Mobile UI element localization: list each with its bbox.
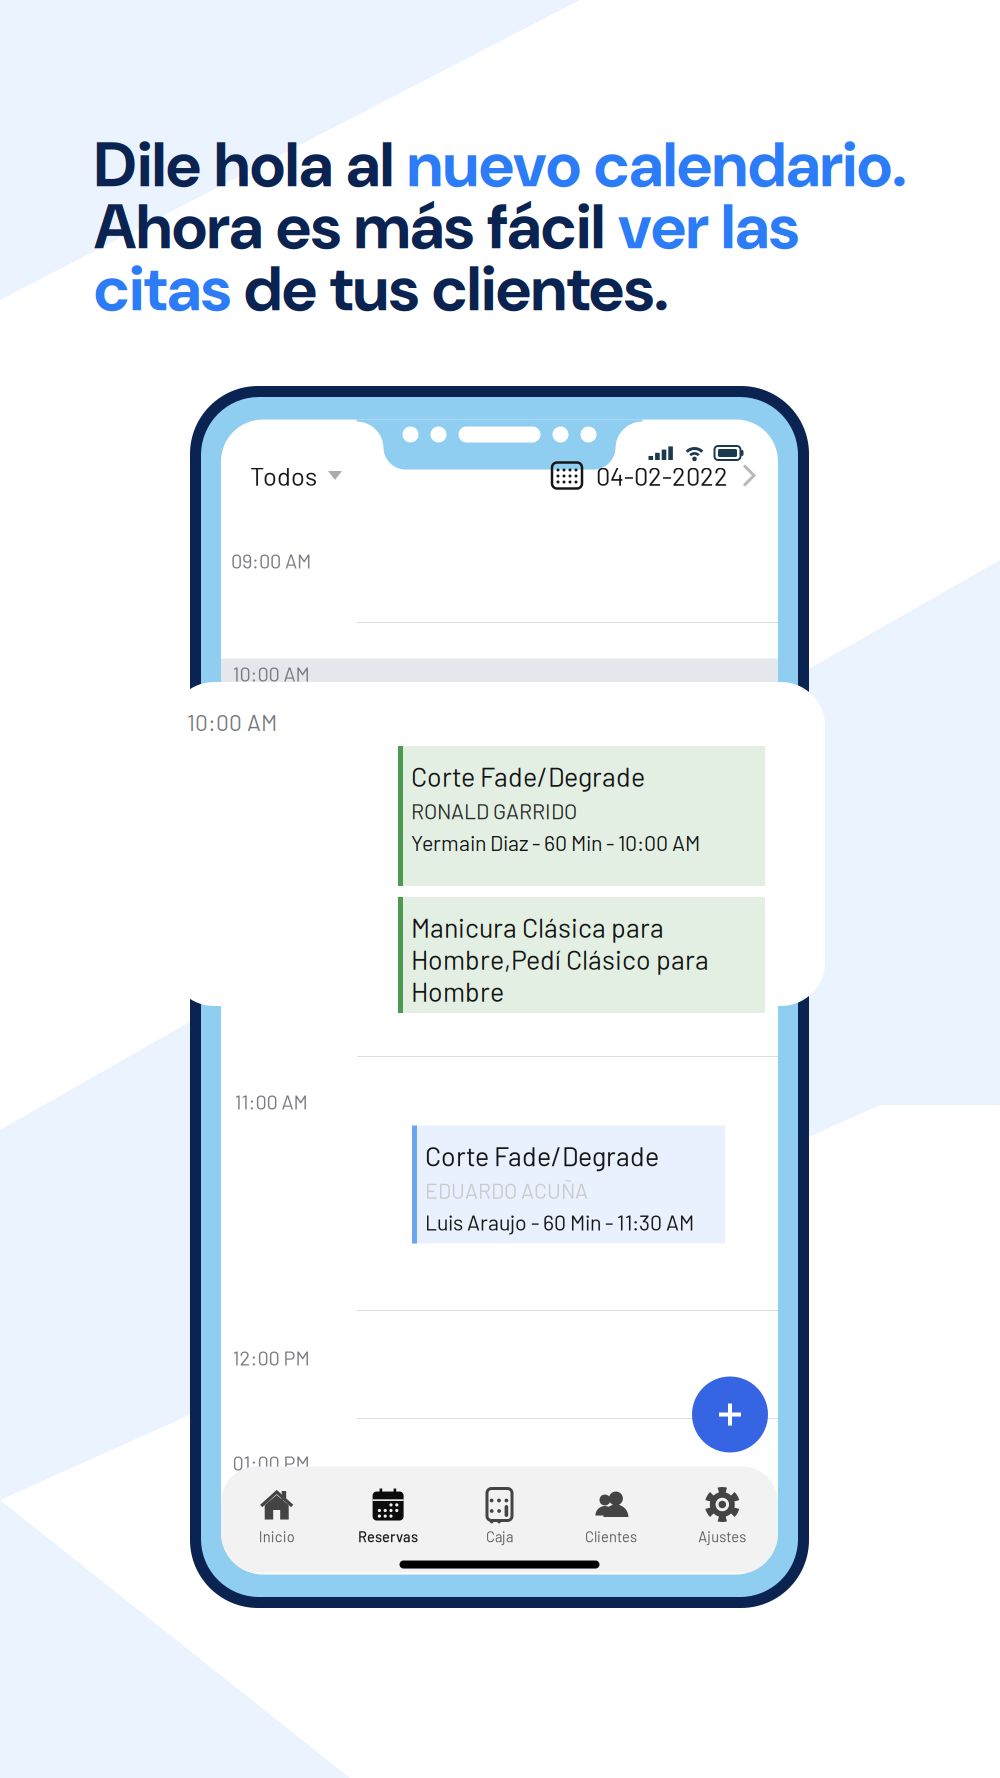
staticText: Dile hola al bbox=[94, 124, 407, 206]
button[interactable]: Manicura Clásica para Hombre,Pedí Clásic… bbox=[398, 897, 765, 1013]
button[interactable]: 04-02-2022 bbox=[552, 460, 756, 491]
button[interactable]: Clientes bbox=[555, 1486, 667, 1545]
staticText: nuevo calendario. bbox=[407, 124, 907, 206]
button[interactable]: Caja bbox=[444, 1486, 555, 1545]
staticText: 01:00 PM bbox=[232, 1450, 309, 1474]
staticText: Yermain Diaz - 60 Min - 10:00 AM bbox=[411, 830, 700, 855]
staticText: Corte Fade/Degrade bbox=[411, 760, 645, 792]
button[interactable]: Todos bbox=[250, 460, 342, 491]
staticText: Ahora es más fácil bbox=[94, 186, 618, 268]
button[interactable]: Ajustes bbox=[667, 1486, 778, 1545]
staticText: Manicura Clásica para Hombre,Pedí Clásic… bbox=[411, 911, 709, 1007]
staticText: 10:00 AM bbox=[187, 708, 277, 736]
staticText: Corte Fade/Degrade bbox=[425, 1139, 659, 1171]
staticText: de tus clientes. bbox=[231, 248, 669, 330]
staticText: 10:00 AM bbox=[232, 661, 309, 685]
staticText: 11:00 AM bbox=[234, 1089, 307, 1113]
button[interactable]: Reservas bbox=[332, 1486, 444, 1545]
staticText: 09:00 AM bbox=[231, 548, 311, 572]
staticText: Inicio bbox=[259, 1527, 295, 1545]
staticText: Ajustes bbox=[698, 1527, 746, 1545]
button[interactable]: Nueva cita bbox=[692, 1376, 768, 1452]
staticText: Todos bbox=[250, 460, 317, 491]
staticText: Luis Araujo - 60 Min - 11:30 AM bbox=[425, 1209, 694, 1235]
staticText: RONALD GARRIDO bbox=[411, 798, 577, 824]
button[interactable]: Inicio bbox=[221, 1486, 332, 1545]
button[interactable]: Corte Fade/Degrade bbox=[398, 746, 765, 886]
staticText: EDUARDO ACUÑA bbox=[425, 1177, 588, 1203]
staticText: ver las bbox=[618, 186, 799, 268]
staticText: Clientes bbox=[585, 1527, 637, 1545]
staticText: citas bbox=[94, 248, 231, 330]
staticText: 04-02-2022 bbox=[596, 460, 728, 491]
staticText: 12:00 PM bbox=[232, 1345, 309, 1369]
button[interactable]: Corte Fade/Degrade bbox=[412, 1125, 725, 1243]
staticText: Caja bbox=[486, 1527, 513, 1545]
staticText: Reservas bbox=[358, 1527, 418, 1545]
